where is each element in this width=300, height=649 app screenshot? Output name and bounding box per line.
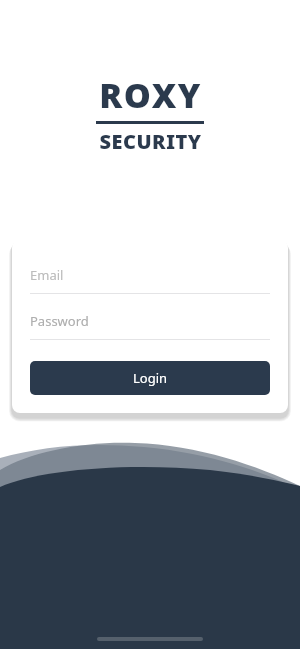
button[interactable]: Login: [30, 361, 270, 395]
staticText: SECURITY: [99, 128, 202, 155]
staticText: ROXY: [99, 72, 202, 118]
staticText: Password: [30, 312, 89, 330]
button[interactable]: Password: [30, 312, 270, 340]
staticText: Login: [133, 369, 168, 387]
button[interactable]: Email: [30, 266, 270, 294]
staticText: Email: [30, 266, 64, 284]
